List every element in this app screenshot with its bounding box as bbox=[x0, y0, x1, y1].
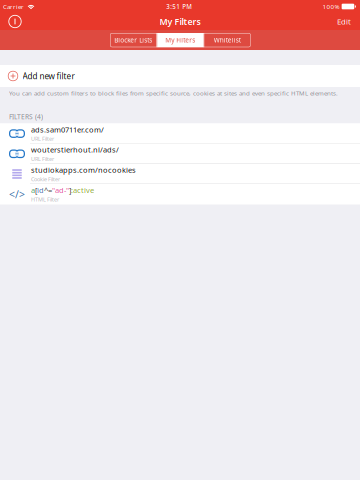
staticText: Edit bbox=[337, 16, 351, 27]
staticText: id bbox=[37, 185, 44, 195]
button[interactable]: My Filters bbox=[157, 33, 203, 47]
staticText: My Filters bbox=[159, 15, 200, 27]
staticText: HTML Filter bbox=[31, 196, 59, 203]
staticText: 100% bbox=[322, 2, 339, 11]
staticText: Whitelist bbox=[214, 36, 241, 44]
button[interactable]: Blocker Lists bbox=[110, 33, 156, 47]
staticText: Cookie Filter bbox=[31, 175, 60, 183]
staticText: Add new filter bbox=[22, 70, 74, 82]
staticText: URL Filter bbox=[31, 135, 54, 142]
staticText: </> bbox=[9, 187, 25, 201]
staticText: wouterstierhout.nl/ads/ bbox=[31, 145, 119, 155]
staticText: ads.sam0711er.com/ bbox=[31, 124, 104, 135]
button[interactable]: ads.sam0711er.com/ bbox=[0, 123, 360, 144]
staticText: Carrier bbox=[3, 2, 24, 11]
button[interactable]: Information bbox=[0, 13, 30, 30]
staticText: studiokapps.com/nocookies bbox=[31, 165, 136, 175]
button[interactable]: studiokapps.com/nocookies bbox=[0, 164, 360, 184]
staticText: [ bbox=[35, 185, 37, 195]
staticText: :active bbox=[71, 185, 94, 195]
staticText: a bbox=[31, 185, 35, 195]
button[interactable]: </> bbox=[0, 184, 360, 204]
button[interactable]: Edit bbox=[319, 13, 360, 30]
staticText: 3:51 PM bbox=[166, 2, 192, 11]
staticText: ^= bbox=[44, 185, 52, 195]
button[interactable]: wouterstierhout.nl/ads/ bbox=[0, 144, 360, 164]
staticText: You can add custom filters to block file… bbox=[9, 89, 338, 97]
staticText: URL Filter bbox=[31, 155, 54, 163]
staticText: "ad-" bbox=[52, 185, 69, 195]
staticText: My Filters bbox=[165, 36, 195, 44]
staticText: Blocker Lists bbox=[114, 36, 152, 44]
staticText: ] bbox=[69, 185, 71, 195]
button[interactable]: Whitelist bbox=[204, 33, 250, 47]
button[interactable]: Add new filter bbox=[0, 65, 360, 87]
staticText: FILTERS (4) bbox=[9, 112, 43, 121]
